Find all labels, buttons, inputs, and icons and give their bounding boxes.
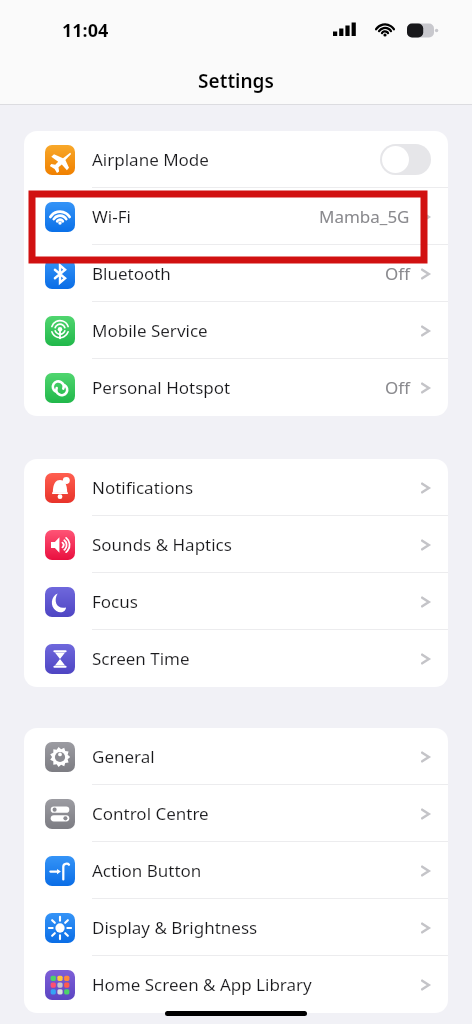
staticText: Control Centre	[92, 802, 209, 825]
other: Open	[420, 593, 431, 611]
staticText: Personal Hotspot	[92, 376, 231, 399]
button[interactable]: Sounds & Haptics	[24, 516, 448, 573]
staticText: Off	[385, 262, 410, 285]
staticText: Off	[385, 376, 410, 399]
staticText: Mobile Service	[92, 319, 208, 342]
other: Open	[420, 322, 431, 340]
staticText: Focus	[92, 590, 138, 613]
staticText: Settings	[0, 68, 472, 94]
other: Open	[420, 862, 431, 880]
other: Open	[420, 379, 431, 397]
other: Open	[420, 265, 431, 283]
button[interactable]: Mobile Service	[24, 302, 448, 359]
button[interactable]: Airplane Mode	[24, 131, 448, 188]
staticText: Display & Brightness	[92, 916, 258, 939]
button[interactable]: Control Centre	[24, 785, 448, 842]
staticText: Mamba_5G	[319, 205, 410, 228]
staticText: Notifications	[92, 476, 194, 499]
other: Open	[420, 479, 431, 497]
button[interactable]: Home Screen & App Library	[24, 956, 448, 1013]
button[interactable]: General	[24, 728, 448, 785]
button[interactable]: Focus	[24, 573, 448, 630]
other: Open	[420, 805, 431, 823]
staticText: Wi-Fi	[92, 205, 131, 228]
other: Open	[420, 976, 431, 994]
button[interactable]: Notifications	[24, 459, 448, 516]
button[interactable]: Screen Time	[24, 630, 448, 687]
staticText: Home Screen & App Library	[92, 973, 312, 996]
staticText: Airplane Mode	[92, 148, 209, 171]
staticText: Screen Time	[92, 647, 190, 670]
staticText: 11:04	[62, 18, 109, 43]
staticText: Action Button	[92, 859, 202, 882]
other: Open	[420, 748, 431, 766]
other: Open	[420, 919, 431, 937]
button[interactable]: Bluetooth	[24, 245, 448, 302]
other: Open	[420, 536, 431, 554]
staticText: General	[92, 745, 155, 768]
staticText: Bluetooth	[92, 262, 171, 285]
staticText: Sounds & Haptics	[92, 533, 232, 556]
button[interactable]: Wi-Fi	[24, 188, 448, 245]
button[interactable]: Action Button	[24, 842, 448, 899]
other: Open	[420, 650, 431, 668]
button[interactable]: Airplane Mode, off	[380, 144, 431, 175]
button[interactable]: Display & Brightness	[24, 899, 448, 956]
other: Open	[420, 208, 431, 226]
button[interactable]: Personal Hotspot	[24, 359, 448, 416]
